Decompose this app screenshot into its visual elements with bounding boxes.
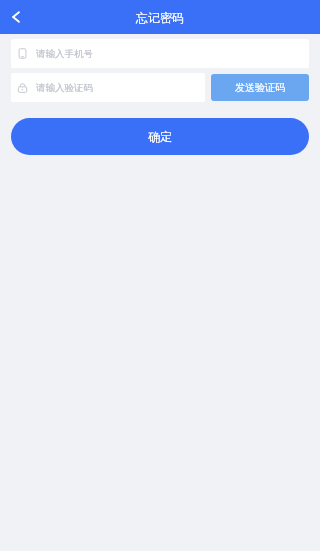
staticText: 请输入手机号 [36, 48, 93, 60]
staticText: 忘记密码 [136, 10, 184, 25]
button[interactable]: 发送验证码 [211, 74, 309, 101]
button[interactable]: Back [0, 0, 34, 34]
button[interactable]: 请输入验证码 [11, 73, 205, 102]
button[interactable]: 确定 [11, 118, 309, 155]
button[interactable]: 请输入手机号 [11, 39, 309, 68]
staticText: 确定 [148, 129, 172, 144]
staticText: 请输入验证码 [36, 82, 93, 94]
staticText: 发送验证码 [235, 81, 285, 94]
